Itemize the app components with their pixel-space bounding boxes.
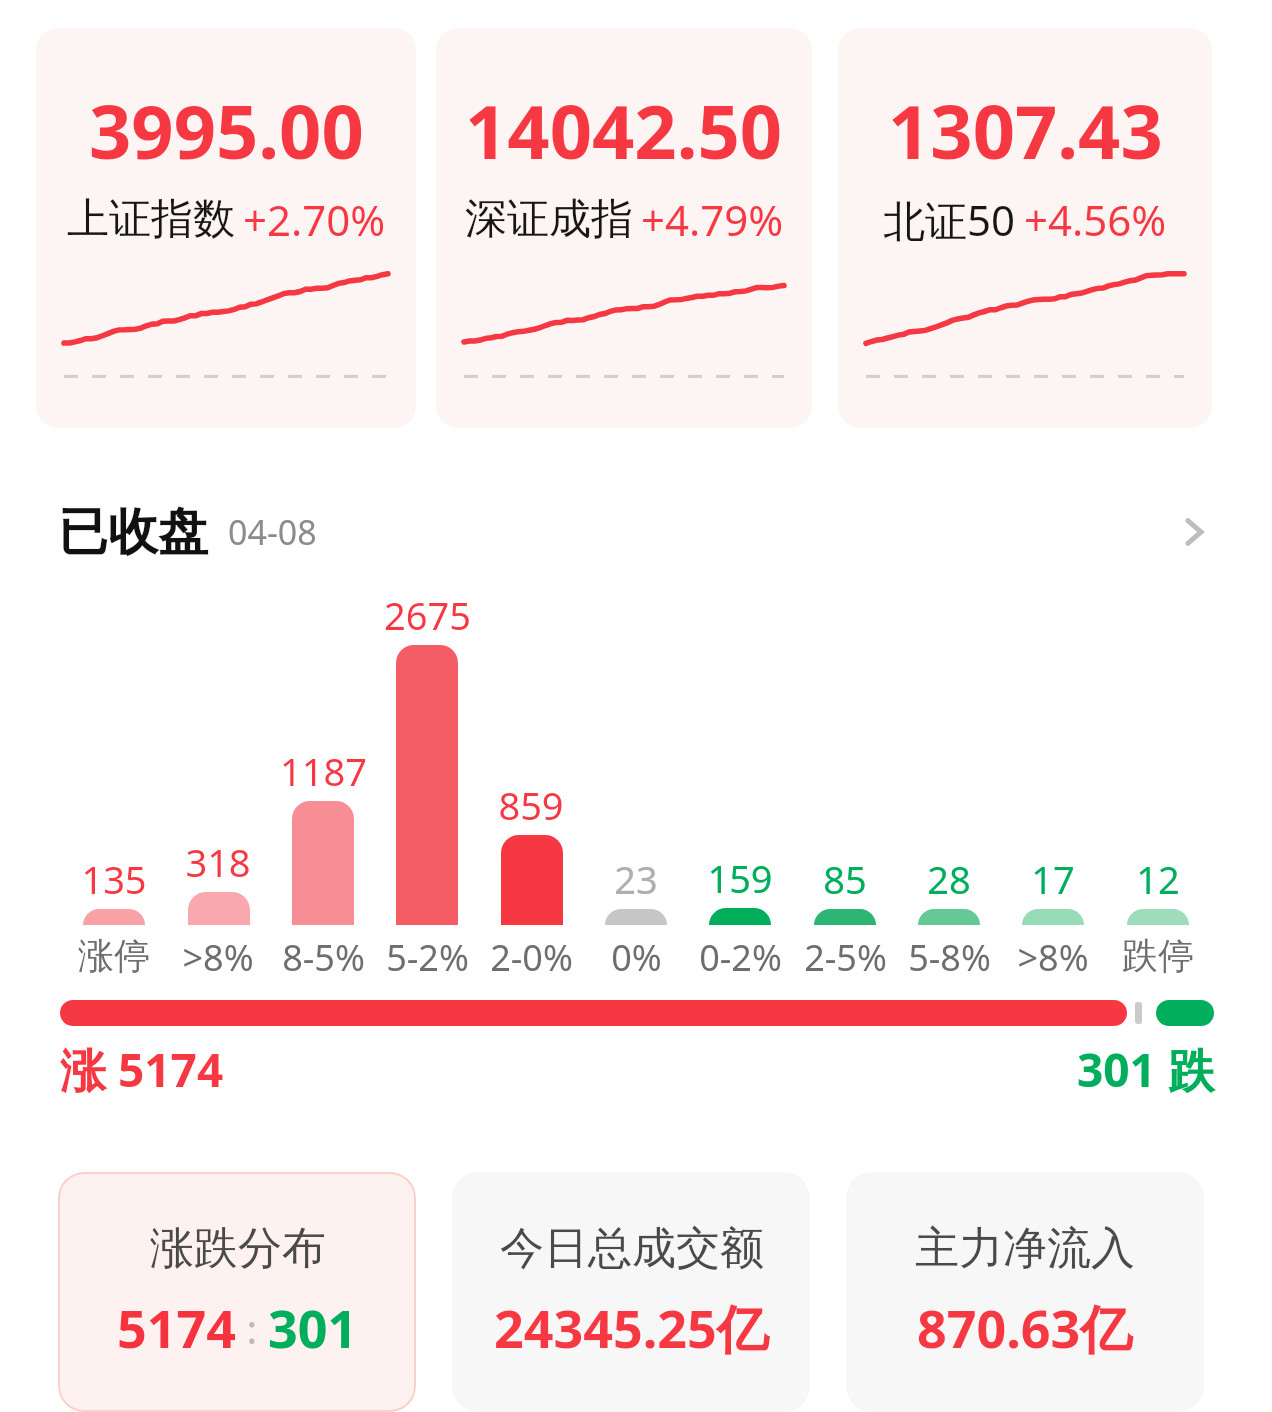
staticText: +2.70% — [243, 191, 386, 248]
staticText: 今日总成交额 — [500, 1221, 764, 1276]
staticText: 跌停 — [1122, 933, 1194, 978]
button[interactable]: 0% — [584, 933, 688, 982]
staticText: 14042.50 — [465, 80, 783, 181]
button[interactable]: 5-8% — [897, 933, 1001, 982]
staticText: 涨跌分布 — [150, 1221, 326, 1276]
staticText: 318 — [185, 836, 251, 888]
staticText: 28 — [927, 853, 971, 905]
button[interactable]: 跌停 — [1106, 933, 1210, 978]
staticText: 1307.43 — [888, 80, 1163, 181]
staticText: : — [236, 1301, 268, 1355]
staticText: 85 — [823, 853, 867, 905]
staticText: 17 — [1031, 853, 1075, 905]
staticText: 159 — [707, 852, 773, 904]
staticText: 870.63亿 — [917, 1292, 1133, 1363]
button[interactable]: >8% — [166, 933, 270, 982]
button[interactable]: 主力净流入 — [846, 1172, 1204, 1412]
staticText: 859 — [498, 779, 564, 831]
staticText: +4.79% — [641, 191, 784, 248]
staticText: 301 跌 — [1077, 1038, 1214, 1101]
staticText: 涨停 — [78, 933, 150, 978]
staticText: 2-5% — [804, 933, 887, 982]
button[interactable]: 5-2% — [375, 933, 479, 982]
staticText: 135 — [81, 853, 147, 905]
staticText: 上证指数 — [67, 193, 235, 246]
button[interactable]: 今日总成交额 — [452, 1172, 810, 1412]
staticText: 0% — [611, 933, 662, 982]
staticText: 5-8% — [908, 933, 991, 982]
button[interactable]: 0-2% — [688, 933, 792, 982]
button[interactable]: 已收盘 — [58, 492, 1216, 572]
staticText: 5-2% — [386, 933, 469, 982]
staticText: 北证50 — [883, 191, 1016, 248]
staticText: 12 — [1136, 853, 1180, 905]
staticText: 0-2% — [699, 933, 782, 982]
other: More details — [1172, 510, 1216, 554]
button[interactable]: 涨跌分布 — [58, 1172, 416, 1412]
staticText: 5174 — [117, 1292, 236, 1363]
button[interactable]: 14042.50 — [436, 28, 812, 428]
staticText: 23 — [614, 853, 658, 905]
staticText: 301 — [268, 1292, 358, 1363]
staticText: 2-0% — [490, 933, 573, 982]
staticText: 1187 — [280, 745, 367, 797]
button[interactable]: >8% — [1001, 933, 1105, 982]
staticText: 深证成指 — [465, 193, 633, 246]
button[interactable]: 2-0% — [479, 933, 583, 982]
button[interactable]: 8-5% — [271, 933, 375, 982]
button[interactable]: 1307.43 — [838, 28, 1212, 428]
staticText: 主力净流入 — [915, 1221, 1135, 1276]
staticText: 04-08 — [228, 509, 317, 555]
staticText: >8% — [182, 933, 254, 982]
button[interactable]: 3995.00 — [36, 28, 416, 428]
staticText: 已收盘 — [58, 501, 208, 564]
staticText: +4.56% — [1024, 191, 1167, 248]
staticText: 8-5% — [282, 933, 365, 982]
staticText: >8% — [1017, 933, 1089, 982]
button[interactable]: 2-5% — [793, 933, 897, 982]
staticText: 2675 — [384, 589, 471, 641]
staticText: 3995.00 — [89, 80, 364, 181]
staticText: 24345.25亿 — [494, 1292, 769, 1363]
button[interactable]: 涨停 — [62, 933, 166, 978]
staticText: 涨 5174 — [60, 1038, 224, 1101]
